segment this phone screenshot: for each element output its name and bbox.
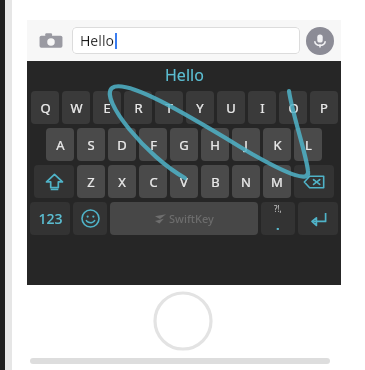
staticText: L	[305, 136, 312, 154]
staticText: R	[134, 99, 143, 117]
button[interactable]: B	[201, 165, 229, 198]
button[interactable]: I	[248, 91, 276, 124]
staticText: Y	[196, 99, 204, 117]
button[interactable]: W	[62, 91, 90, 124]
button[interactable]: C	[139, 165, 167, 198]
staticText: C	[149, 173, 158, 191]
staticText: W	[70, 99, 83, 117]
button[interactable]: V	[170, 165, 198, 198]
staticText: S	[87, 136, 95, 154]
staticText: O	[288, 99, 299, 117]
staticText: A	[56, 136, 65, 154]
button[interactable]: N	[232, 165, 260, 198]
button[interactable]: F	[139, 128, 167, 161]
button[interactable]: Y	[186, 91, 214, 124]
staticText: B	[211, 173, 220, 191]
button[interactable]: Home	[152, 290, 214, 352]
staticText: V	[180, 173, 188, 191]
staticText: P	[320, 99, 328, 117]
button[interactable]: Q	[31, 91, 59, 124]
button[interactable]: Punctuation	[261, 202, 295, 235]
staticText: H	[210, 136, 220, 154]
button[interactable]: H	[201, 128, 229, 161]
staticText: SwiftKey	[169, 211, 214, 226]
staticText: M	[271, 173, 283, 191]
button[interactable]: Hello	[72, 27, 300, 54]
button[interactable]: Backspace	[294, 165, 334, 198]
button[interactable]: R	[124, 91, 152, 124]
button[interactable]: Hello	[151, 61, 218, 89]
button[interactable]: M	[263, 165, 291, 198]
staticText: T	[165, 99, 173, 117]
staticText: G	[179, 136, 189, 154]
staticText: 123	[38, 209, 63, 228]
staticText: K	[273, 136, 282, 154]
staticText: ?!,	[274, 203, 282, 214]
button[interactable]: P	[310, 91, 338, 124]
button[interactable]: Enter	[298, 202, 338, 235]
button[interactable]: G	[170, 128, 198, 161]
button[interactable]: K	[263, 128, 291, 161]
staticText: Hello	[80, 31, 114, 50]
button[interactable]: Voice input	[306, 27, 334, 55]
button[interactable]: Emoji	[73, 202, 107, 235]
button[interactable]: Z	[77, 165, 105, 198]
button[interactable]: O	[279, 91, 307, 124]
button[interactable]: Camera	[34, 24, 68, 58]
button[interactable]: U	[217, 91, 245, 124]
button[interactable]: A	[46, 128, 74, 161]
button[interactable]: 123	[30, 202, 70, 235]
staticText: U	[226, 99, 236, 117]
button[interactable]: Space	[110, 202, 258, 235]
button[interactable]: J	[232, 128, 260, 161]
staticText: E	[103, 99, 111, 117]
staticText: D	[117, 136, 127, 154]
button[interactable]: L	[294, 128, 322, 161]
staticText: I	[260, 99, 265, 117]
staticText: Z	[87, 173, 95, 191]
staticText: .	[276, 216, 280, 234]
staticText: J	[244, 136, 248, 154]
button[interactable]: E	[93, 91, 121, 124]
staticText: F	[150, 136, 157, 154]
staticText: Hello	[165, 64, 204, 86]
button[interactable]: T	[155, 91, 183, 124]
staticText: X	[118, 173, 126, 191]
staticText: Q	[40, 99, 51, 117]
button[interactable]: D	[108, 128, 136, 161]
button[interactable]: Shift	[34, 165, 74, 198]
staticText: N	[241, 173, 251, 191]
button[interactable]: X	[108, 165, 136, 198]
button[interactable]: S	[77, 128, 105, 161]
